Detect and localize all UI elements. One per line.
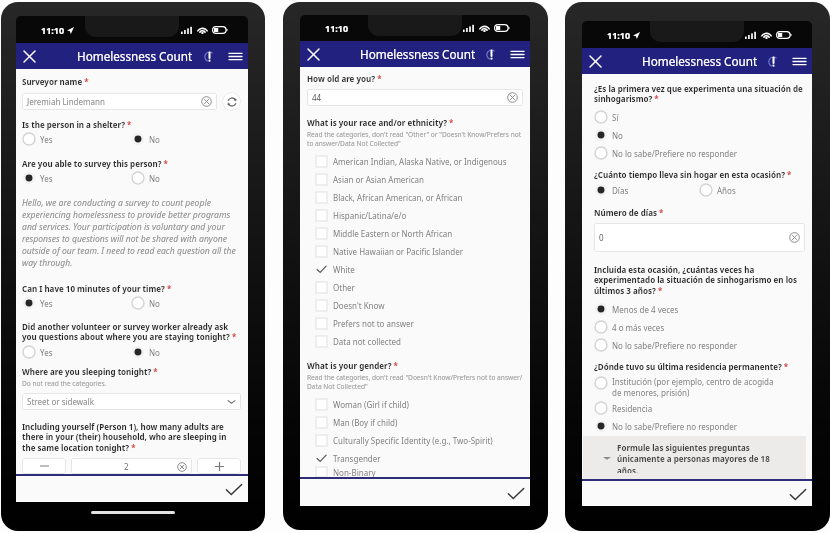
staticText: Yes	[40, 347, 53, 358]
button[interactable]: Años	[699, 183, 805, 197]
button[interactable]: Non-Binary	[307, 467, 523, 477]
button[interactable]: Woman (Girl if child)	[307, 395, 523, 413]
button[interactable]: No	[131, 345, 241, 359]
button[interactable]: Culturally Specific Identity (e.g., Two-…	[307, 431, 523, 449]
button[interactable]: No lo sabe/Prefiere no responder	[594, 337, 738, 353]
button[interactable]: Yes	[22, 296, 131, 310]
other: Clear	[789, 232, 800, 243]
staticText: 2	[124, 461, 129, 472]
button[interactable]: Transgender	[307, 449, 523, 467]
button[interactable]: No	[594, 127, 623, 143]
button[interactable]: 44	[307, 89, 523, 106]
staticText: ¿Es la primera vez que experimenta una s…	[594, 83, 805, 105]
staticText: Hello, we are conducting a survey to cou…	[22, 197, 241, 269]
staticText: Native Hawaiian or Pacific Islander	[333, 246, 463, 257]
button[interactable]: Yes	[22, 171, 131, 185]
staticText: Número de días *	[594, 207, 664, 218]
staticText: Yes	[40, 298, 53, 309]
staticText: What is your race and/or ethnicity? *	[307, 117, 454, 128]
staticText: Can I have 10 minutes of your time? *	[22, 283, 172, 294]
button[interactable]: Close	[300, 41, 326, 67]
button[interactable]: Menu	[786, 48, 812, 74]
button[interactable]: Submit	[507, 484, 525, 502]
button[interactable]: Formule las siguientes preguntas únicame…	[583, 442, 806, 473]
staticText: Homelessness Count	[642, 53, 758, 69]
staticText: Are you able to survey this person? *	[22, 158, 168, 169]
button[interactable]: Menos de 4 veces	[594, 301, 679, 317]
staticText: Man (Boy if child)	[333, 417, 398, 428]
button[interactable]: Data not collected	[307, 332, 523, 350]
staticText: 44	[312, 92, 507, 103]
button[interactable]: Alerts	[196, 43, 222, 69]
button[interactable]: Black, African American, or African	[307, 188, 523, 206]
button[interactable]: Menu	[504, 41, 530, 67]
staticText: Culturally Specific Identity (e.g., Two-…	[333, 435, 493, 446]
button[interactable]: Hispanic/Latina/e/o	[307, 206, 523, 224]
button[interactable]: Submit	[225, 480, 243, 498]
button[interactable]: No	[131, 296, 241, 310]
button[interactable]: Doesn't Know	[307, 296, 523, 314]
staticText: No	[149, 173, 160, 184]
button[interactable]: Días	[594, 183, 699, 197]
button[interactable]: Decrease	[22, 458, 66, 474]
button[interactable]: Sí	[594, 109, 619, 125]
staticText: White	[333, 264, 355, 275]
button[interactable]: Yes	[22, 345, 131, 359]
staticText: Días	[612, 185, 629, 196]
other: Clear	[177, 462, 187, 472]
button[interactable]: Close	[582, 48, 608, 74]
staticText: Including yourself (Person 1), how many …	[22, 421, 241, 454]
button[interactable]: No lo sabe/Prefiere no responder	[594, 145, 738, 161]
staticText: Residencia	[612, 403, 653, 414]
button[interactable]: 0	[594, 223, 805, 252]
button[interactable]: Refresh	[222, 92, 241, 111]
button[interactable]: Yes	[22, 132, 131, 146]
staticText: Read the categories, don't read "Other" …	[307, 130, 523, 148]
staticText: No lo sabe/Prefiere no responder	[612, 421, 738, 432]
button[interactable]: Man (Boy if child)	[307, 413, 523, 431]
staticText: Street or sidewalk	[27, 396, 227, 407]
button[interactable]: No	[131, 132, 241, 146]
button[interactable]: Native Hawaiian or Pacific Islander	[307, 242, 523, 260]
button[interactable]: 4 o más veces	[594, 319, 665, 335]
button[interactable]: American Indian, Alaska Native, or Indig…	[307, 152, 523, 170]
staticText: No lo sabe/Prefiere no responder	[612, 148, 738, 159]
staticText: Sí	[612, 112, 619, 123]
button[interactable]: Menu	[222, 43, 248, 69]
staticText: Institución (por ejemplo, centro de acog…	[612, 376, 785, 398]
button[interactable]: Close	[16, 43, 42, 69]
staticText: Black, African American, or African	[333, 192, 463, 203]
button[interactable]: Middle Eastern or North African	[307, 224, 523, 242]
button[interactable]: Alerts	[478, 41, 504, 67]
button[interactable]: Prefers not to answer	[307, 314, 523, 332]
staticText: 0	[599, 232, 789, 243]
staticText: Read the categories, don't read "Doesn't…	[307, 373, 523, 391]
staticText: Data not collected	[333, 336, 402, 347]
button[interactable]: No	[131, 171, 241, 185]
button[interactable]: Submit	[789, 485, 807, 503]
staticText: No	[149, 347, 160, 358]
button[interactable]: No lo sabe/Prefiere no responder	[594, 418, 738, 434]
staticText: Prefers not to answer	[333, 318, 414, 329]
staticText: No	[149, 298, 160, 309]
staticText: Surveyor name *	[22, 76, 89, 87]
staticText: No	[149, 134, 160, 145]
button[interactable]: Residencia	[594, 400, 653, 416]
staticText: Transgender	[333, 453, 381, 464]
button[interactable]: Institución (por ejemplo, centro de acog…	[594, 376, 805, 398]
button[interactable]: White	[307, 260, 523, 278]
button[interactable]: Asian or Asian American	[307, 170, 523, 188]
staticText: American Indian, Alaska Native, or Indig…	[333, 156, 507, 167]
other: Clear	[507, 92, 518, 103]
button[interactable]: Increase	[197, 458, 241, 474]
button[interactable]: Alerts	[760, 48, 786, 74]
button[interactable]: Street or sidewalk	[22, 393, 241, 410]
staticText: 11:10	[41, 24, 65, 36]
staticText: Hispanic/Latina/e/o	[333, 210, 407, 221]
staticText: Años	[717, 185, 736, 196]
staticText: Homelessness Count	[77, 48, 193, 64]
button[interactable]: Other	[307, 278, 523, 296]
staticText: What is your gender? *	[307, 360, 398, 371]
button[interactable]: 2	[71, 458, 192, 474]
button[interactable]: Jeremiah Lindemann	[22, 93, 217, 110]
